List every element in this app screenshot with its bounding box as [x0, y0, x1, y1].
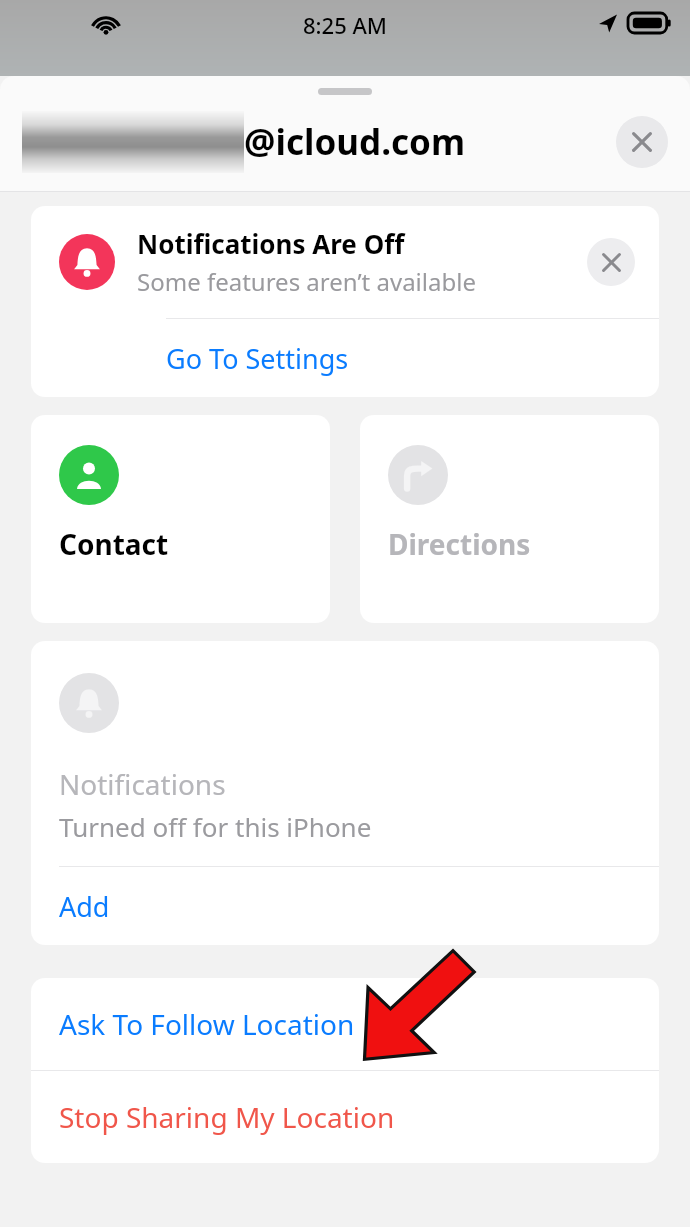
staticText: Stop Sharing My Location: [59, 1098, 395, 1136]
button[interactable]: Go To Settings: [31, 319, 659, 397]
button[interactable]: Ask To Follow Location: [31, 978, 659, 1070]
staticText: Contact: [59, 525, 169, 563]
button[interactable]: Stop Sharing My Location: [31, 1071, 659, 1163]
button[interactable]: Add: [31, 867, 659, 945]
staticText: 8:25 AM: [303, 10, 388, 40]
staticText: Notifications: [59, 765, 226, 803]
staticText: Turned off for this iPhone: [59, 809, 372, 844]
button[interactable]: Notifications: [31, 641, 659, 866]
staticText: Directions: [388, 525, 531, 563]
button[interactable]: Directions: [360, 415, 659, 623]
staticText: Some features aren’t available: [137, 265, 476, 298]
button[interactable]: Dismiss: [587, 238, 635, 286]
button[interactable]: Notifications Are Off: [31, 206, 659, 318]
button[interactable]: Contact: [31, 415, 330, 623]
staticText: Add: [59, 888, 110, 925]
staticText: @icloud.com: [244, 118, 466, 166]
staticText: Ask To Follow Location: [59, 1005, 355, 1043]
button[interactable]: Close: [616, 116, 668, 168]
staticText: Notifications Are Off: [137, 226, 405, 261]
staticText: Go To Settings: [166, 340, 349, 377]
